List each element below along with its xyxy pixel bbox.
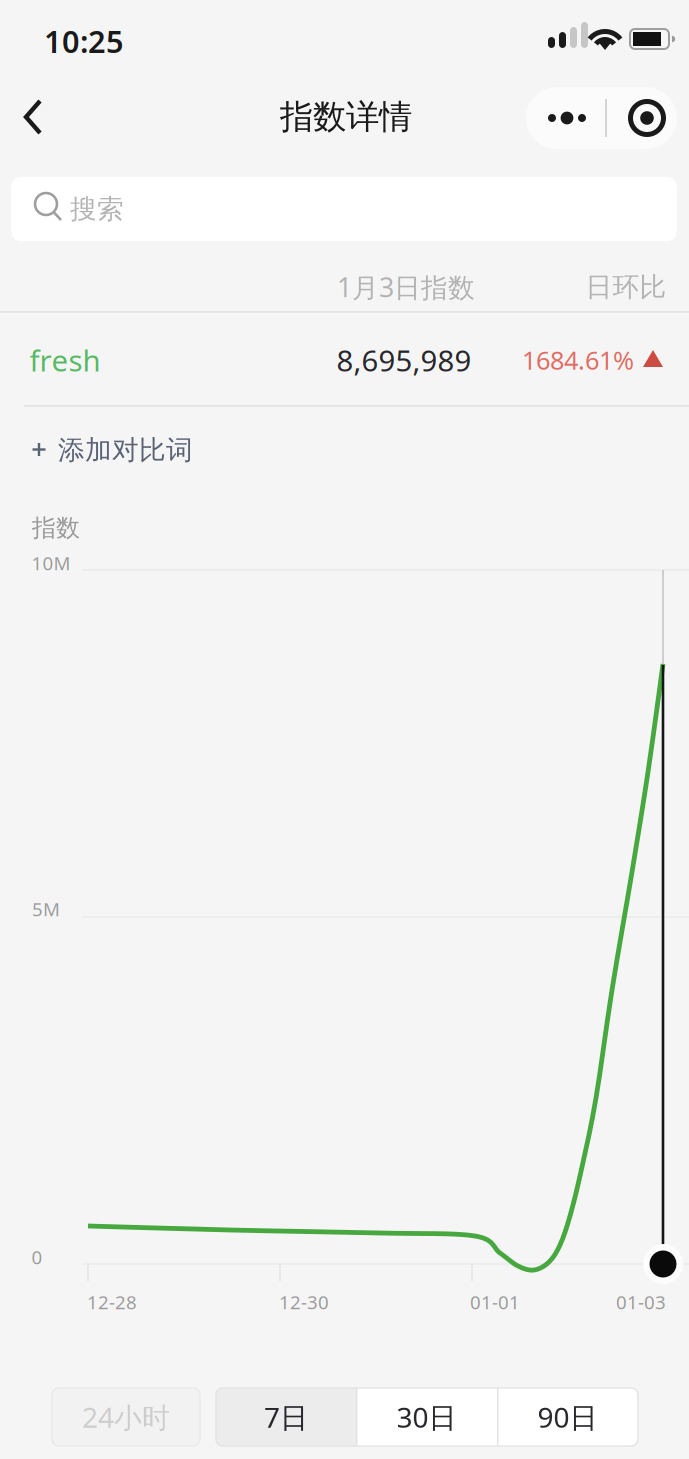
button[interactable]: 30日 [356, 1388, 497, 1446]
staticText: fresh [29, 340, 100, 379]
staticText: 1684.61% [522, 343, 634, 377]
button[interactable]: 90日 [497, 1388, 638, 1446]
button[interactable]: Close mini program [612, 87, 682, 149]
staticText: 12-28 [87, 1290, 137, 1314]
button[interactable]: Back [0, 89, 56, 145]
staticText: 10M [31, 551, 70, 575]
staticText: 90日 [537, 1398, 597, 1436]
button[interactable]: More [526, 87, 606, 149]
staticText: 0 [31, 1245, 42, 1269]
staticText: 8,695,989 [336, 340, 471, 379]
staticText: 搜索 [70, 193, 124, 225]
staticText: 12-30 [279, 1290, 329, 1314]
staticText: 30日 [396, 1398, 456, 1436]
staticText: 添加对比词 [58, 434, 193, 466]
button[interactable]: 添加对比词 [0, 419, 689, 481]
staticText: 10:25 [44, 21, 124, 61]
staticText: 指数 [32, 513, 80, 543]
staticText: 5M [32, 897, 60, 921]
staticText: 24小时 [82, 1398, 170, 1436]
button[interactable]: 24小时 [52, 1388, 200, 1446]
staticText: 1月3日指数 [337, 269, 475, 305]
staticText: 7日 [264, 1398, 308, 1436]
staticText: 01-01 [470, 1290, 520, 1314]
staticText: 01-03 [616, 1290, 666, 1314]
button[interactable]: 7日 [216, 1388, 356, 1446]
staticText: 指数详情 [280, 96, 412, 137]
staticText: 日环比 [585, 271, 666, 303]
